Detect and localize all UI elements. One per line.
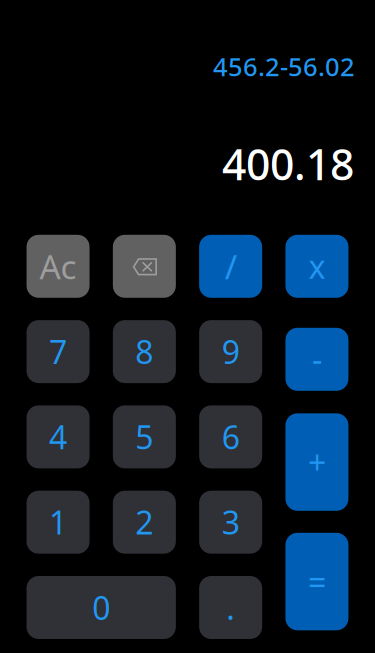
button[interactable]: 2 [113,491,176,554]
button[interactable]: Ac [26,235,89,298]
staticText: + [308,441,326,483]
button[interactable]: 9 [199,320,262,383]
staticText: 8 [135,330,153,373]
staticText: 9 [222,330,240,373]
button[interactable]: 1 [26,491,89,554]
button[interactable]: / [199,235,262,298]
staticText: = [308,560,326,603]
button[interactable]: 8 [113,320,176,383]
button[interactable]: . [199,576,262,639]
button[interactable]: 3 [199,491,262,554]
staticText: x [308,245,325,288]
staticText: . [226,586,235,629]
button[interactable]: 5 [113,405,176,468]
staticText: 5 [135,416,153,458]
staticText: Ac [39,244,76,288]
staticText: 3 [222,501,240,543]
staticText: 0 [92,586,110,629]
button[interactable]: = [285,533,348,630]
button[interactable]: + [285,413,348,511]
staticText: 1 [49,501,67,543]
staticText: / [225,244,237,288]
button[interactable]: 7 [26,320,89,383]
button[interactable]: 4 [26,405,89,468]
staticText: 2 [135,501,153,543]
button[interactable]: 6 [199,405,262,468]
staticText: 400.18 [222,135,354,193]
button[interactable]: x [285,235,348,298]
button[interactable]: Delete [113,235,176,298]
staticText: 6 [222,416,240,458]
button[interactable]: 0 [26,576,176,639]
button[interactable]: - [285,328,348,391]
staticText: - [312,338,322,381]
staticText: 4 [49,416,67,458]
staticText: 456.2-56.02 [213,49,355,84]
staticText: 7 [49,330,67,373]
